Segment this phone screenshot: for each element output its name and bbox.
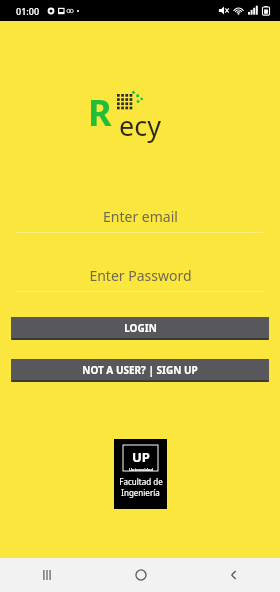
staticText: Universidad [129,467,153,471]
button[interactable]: LOGIN [11,317,269,340]
staticText: UP [132,448,150,466]
staticText: Enter email [103,207,178,226]
button[interactable]: UP [114,439,167,509]
button[interactable]: Recent apps [0,558,94,592]
button[interactable]: NOT A USER? | SIGN UP [11,359,269,382]
staticText: R [88,88,112,137]
staticText: Ingeniería [121,487,160,498]
staticText: 01:00 [16,5,40,17]
staticText: Enter Password [89,266,192,285]
staticText: LOGIN [124,321,157,335]
button[interactable]: Enter Password [16,264,264,292]
staticText: ecy [119,107,161,144]
staticText: Facultad de [119,476,163,487]
button[interactable]: Back [187,558,280,592]
button[interactable]: Enter email [16,205,264,233]
staticText: NOT A USER? | SIGN UP [82,363,198,377]
button[interactable]: Home [94,558,187,592]
